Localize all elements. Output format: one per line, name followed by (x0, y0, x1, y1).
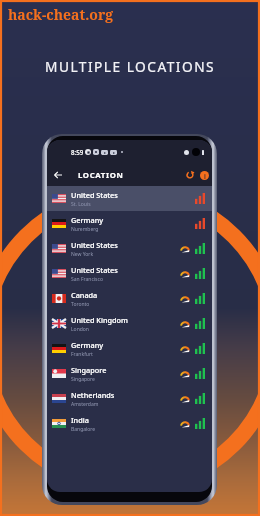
staticText: Toronto (71, 301, 90, 308)
button[interactable]: United States (47, 236, 212, 261)
staticText: Canada (71, 290, 98, 300)
button[interactable]: United States (47, 261, 212, 286)
button[interactable]: United States (47, 186, 212, 211)
staticText: United Kingdom (71, 315, 128, 325)
button[interactable]: Back (47, 164, 69, 186)
staticText: i (204, 172, 206, 180)
button[interactable]: Singapore (47, 361, 212, 386)
button[interactable]: Canada (47, 286, 212, 311)
staticText: MULTIPLE LOCATIONS (45, 57, 216, 76)
staticText: Netherlands (71, 390, 115, 400)
staticText: Germany (71, 340, 104, 350)
staticText: United States (71, 190, 118, 200)
button[interactable]: United Kingdom (47, 311, 212, 336)
staticText: Bangalore (71, 426, 96, 433)
staticText: Germany (71, 215, 104, 225)
button[interactable]: Germany (47, 211, 212, 236)
button[interactable]: Info (196, 167, 212, 183)
staticText: LOCATION (78, 170, 124, 181)
staticText: London (71, 326, 89, 333)
staticText: St. Louis (71, 201, 91, 208)
staticText: United States (71, 240, 118, 250)
staticText: Singapore (71, 376, 95, 383)
staticText: 8:59 (71, 148, 84, 156)
button[interactable]: Germany (47, 336, 212, 361)
staticText: India (71, 415, 89, 425)
staticText: United States (71, 265, 118, 275)
staticText: Amsterdam (71, 401, 99, 408)
staticText: Frankfurt (71, 351, 93, 358)
button[interactable]: Netherlands (47, 386, 212, 411)
staticText: San Francisco (71, 276, 103, 283)
staticText: New York (71, 251, 94, 258)
button[interactable]: India (47, 411, 212, 436)
button[interactable]: Refresh (182, 167, 198, 183)
staticText: Singapore (71, 365, 107, 375)
staticText: hack-cheat.org (8, 5, 114, 24)
staticText: Nuremberg (71, 226, 99, 233)
